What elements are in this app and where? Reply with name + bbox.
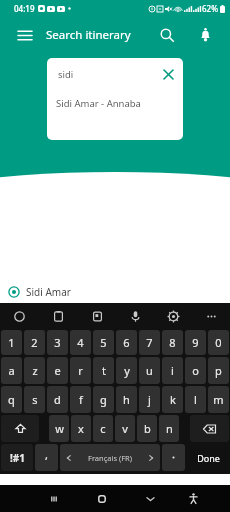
staticText: c bbox=[100, 421, 106, 436]
button[interactable]: s bbox=[24, 386, 45, 413]
staticText: n bbox=[166, 421, 173, 436]
button[interactable]: !#1 bbox=[1, 444, 33, 471]
staticText: i bbox=[171, 363, 174, 378]
button[interactable]: Home bbox=[78, 485, 126, 512]
button[interactable]: m bbox=[208, 386, 229, 413]
staticText: 9 bbox=[192, 335, 199, 350]
staticText: y bbox=[124, 363, 130, 378]
button[interactable]: c bbox=[93, 415, 113, 442]
button[interactable]: Done bbox=[187, 444, 229, 471]
button[interactable]: Emoji bbox=[0, 303, 39, 329]
button[interactable]: Comma bbox=[35, 444, 58, 471]
button[interactable]: Sidi Amar - Annaba bbox=[47, 90, 183, 116]
button[interactable]: More options bbox=[192, 303, 230, 329]
staticText: v bbox=[122, 421, 128, 436]
staticText: u bbox=[146, 363, 153, 378]
button[interactable]: v bbox=[115, 415, 135, 442]
button[interactable]: Accessibility bbox=[174, 485, 213, 512]
button[interactable]: 5 bbox=[93, 330, 114, 355]
staticText: t bbox=[102, 363, 106, 378]
button[interactable]: 6 bbox=[116, 330, 137, 355]
button[interactable]: Search bbox=[156, 24, 178, 46]
button[interactable]: x bbox=[71, 415, 91, 442]
button[interactable]: 1 bbox=[1, 330, 22, 355]
staticText: 5 bbox=[100, 335, 107, 350]
staticText: 7 bbox=[146, 335, 153, 350]
button[interactable]: o bbox=[185, 357, 206, 384]
staticText: b bbox=[144, 421, 151, 436]
button[interactable]: Translate bbox=[78, 303, 116, 329]
staticText: d bbox=[54, 392, 61, 407]
button[interactable]: p bbox=[208, 357, 229, 384]
button[interactable]: r bbox=[70, 357, 91, 384]
button[interactable]: Open navigation menu bbox=[14, 24, 36, 46]
button[interactable]: Period bbox=[162, 444, 185, 471]
staticText: k bbox=[170, 392, 176, 407]
staticText: 04:19 bbox=[14, 3, 35, 14]
staticText: p bbox=[215, 363, 222, 378]
staticText: 8 bbox=[169, 335, 176, 350]
button[interactable]: Clipboard bbox=[39, 303, 78, 329]
staticText: s bbox=[32, 392, 38, 407]
button[interactable]: f bbox=[70, 386, 91, 413]
button[interactable]: Recent apps bbox=[30, 485, 78, 512]
button[interactable]: t bbox=[93, 357, 114, 384]
button[interactable]: 3 bbox=[47, 330, 68, 355]
staticText: o bbox=[192, 363, 199, 378]
staticText: Français (FR) bbox=[73, 453, 147, 463]
staticText: 1 bbox=[8, 335, 15, 350]
button[interactable]: l bbox=[185, 386, 206, 413]
staticText: Search itinerary bbox=[46, 27, 131, 43]
button[interactable]: y bbox=[116, 357, 137, 384]
button[interactable]: Voice input bbox=[116, 303, 154, 329]
button[interactable]: k bbox=[162, 386, 183, 413]
button[interactable]: Backspace bbox=[190, 415, 229, 442]
staticText: w bbox=[55, 421, 64, 436]
button[interactable]: Shift bbox=[1, 415, 39, 442]
button[interactable]: d bbox=[47, 386, 68, 413]
button[interactable]: Hide keyboard bbox=[126, 485, 174, 512]
button[interactable]: u bbox=[139, 357, 160, 384]
button[interactable]: w bbox=[49, 415, 69, 442]
staticText: m bbox=[213, 392, 224, 407]
button[interactable]: Clear search text bbox=[160, 66, 176, 82]
staticText: g bbox=[100, 392, 107, 407]
staticText: 4 bbox=[77, 335, 84, 350]
button[interactable]: g bbox=[93, 386, 114, 413]
button[interactable]: Notifications bbox=[194, 24, 216, 46]
staticText: l bbox=[194, 392, 197, 407]
button[interactable]: e bbox=[47, 357, 68, 384]
staticText: e bbox=[54, 363, 61, 378]
staticText: j bbox=[148, 392, 151, 407]
button[interactable]: h bbox=[116, 386, 137, 413]
button[interactable]: a bbox=[1, 357, 22, 384]
button[interactable]: i bbox=[162, 357, 183, 384]
button[interactable]: j bbox=[139, 386, 160, 413]
button[interactable]: 0 bbox=[208, 330, 229, 355]
button[interactable]: n bbox=[159, 415, 179, 442]
staticText: 6 bbox=[123, 335, 130, 350]
button[interactable]: 2 bbox=[24, 330, 45, 355]
button[interactable]: b bbox=[137, 415, 157, 442]
button[interactable]: Sidi Amar bbox=[0, 281, 230, 303]
button[interactable]: 8 bbox=[162, 330, 183, 355]
staticText: Done bbox=[197, 452, 220, 464]
button[interactable]: 9 bbox=[185, 330, 206, 355]
button[interactable]: Settings bbox=[154, 303, 192, 329]
button[interactable]: Space, Français (FR) bbox=[60, 444, 160, 471]
staticText: !#1 bbox=[10, 451, 25, 465]
button[interactable]: z bbox=[24, 357, 45, 384]
staticText: h bbox=[123, 392, 130, 407]
button[interactable]: q bbox=[1, 386, 22, 413]
staticText: r bbox=[78, 363, 83, 378]
staticText: Sidi Amar - Annaba bbox=[56, 97, 141, 110]
staticText: x bbox=[78, 421, 84, 436]
staticText: sidi bbox=[58, 68, 160, 81]
button[interactable]: sidi bbox=[47, 58, 183, 90]
staticText: f bbox=[79, 392, 83, 407]
button[interactable]: 7 bbox=[139, 330, 160, 355]
staticText: 0 bbox=[215, 335, 222, 350]
staticText: z bbox=[32, 363, 38, 378]
button[interactable]: 4 bbox=[70, 330, 91, 355]
staticText: a bbox=[8, 363, 15, 378]
